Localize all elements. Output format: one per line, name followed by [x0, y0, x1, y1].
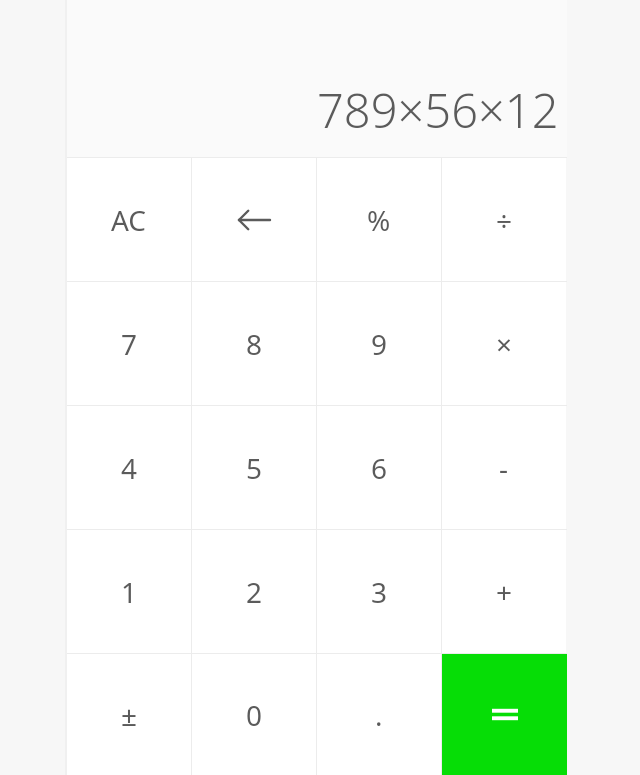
button[interactable]: ±: [67, 654, 191, 775]
button[interactable]: ÷: [442, 158, 566, 281]
button[interactable]: 7: [67, 282, 191, 405]
staticText: AC: [111, 201, 147, 239]
staticText: +: [496, 573, 513, 611]
button[interactable]: -: [442, 406, 566, 529]
staticText: -: [499, 449, 509, 487]
button[interactable]: 4: [67, 406, 191, 529]
button[interactable]: Equals: [442, 654, 567, 775]
staticText: ×: [496, 325, 513, 363]
button[interactable]: 9: [317, 282, 441, 405]
staticText: 3: [371, 573, 388, 611]
button[interactable]: .: [317, 654, 441, 775]
staticText: 4: [121, 449, 138, 487]
staticText: 5: [246, 449, 263, 487]
button[interactable]: %: [317, 158, 441, 281]
staticText: ÷: [496, 201, 513, 239]
staticText: 789×56×12: [317, 78, 559, 142]
button[interactable]: 5: [192, 406, 316, 529]
staticText: .: [375, 696, 383, 734]
button[interactable]: 6: [317, 406, 441, 529]
button[interactable]: 8: [192, 282, 316, 405]
staticText: 8: [246, 325, 263, 363]
button[interactable]: 0: [192, 654, 316, 775]
staticText: 2: [246, 573, 263, 611]
staticText: 1: [121, 573, 138, 611]
button[interactable]: AC: [67, 158, 191, 281]
staticText: 7: [121, 325, 138, 363]
button[interactable]: 1: [67, 530, 191, 653]
staticText: %: [367, 201, 391, 239]
button[interactable]: ×: [442, 282, 566, 405]
button[interactable]: 3: [317, 530, 441, 653]
staticText: 9: [371, 325, 388, 363]
staticText: 0: [246, 696, 263, 734]
button[interactable]: Backspace: [192, 158, 316, 281]
staticText: 6: [371, 449, 388, 487]
button[interactable]: 2: [192, 530, 316, 653]
button[interactable]: +: [442, 530, 566, 653]
staticText: ±: [121, 696, 138, 734]
